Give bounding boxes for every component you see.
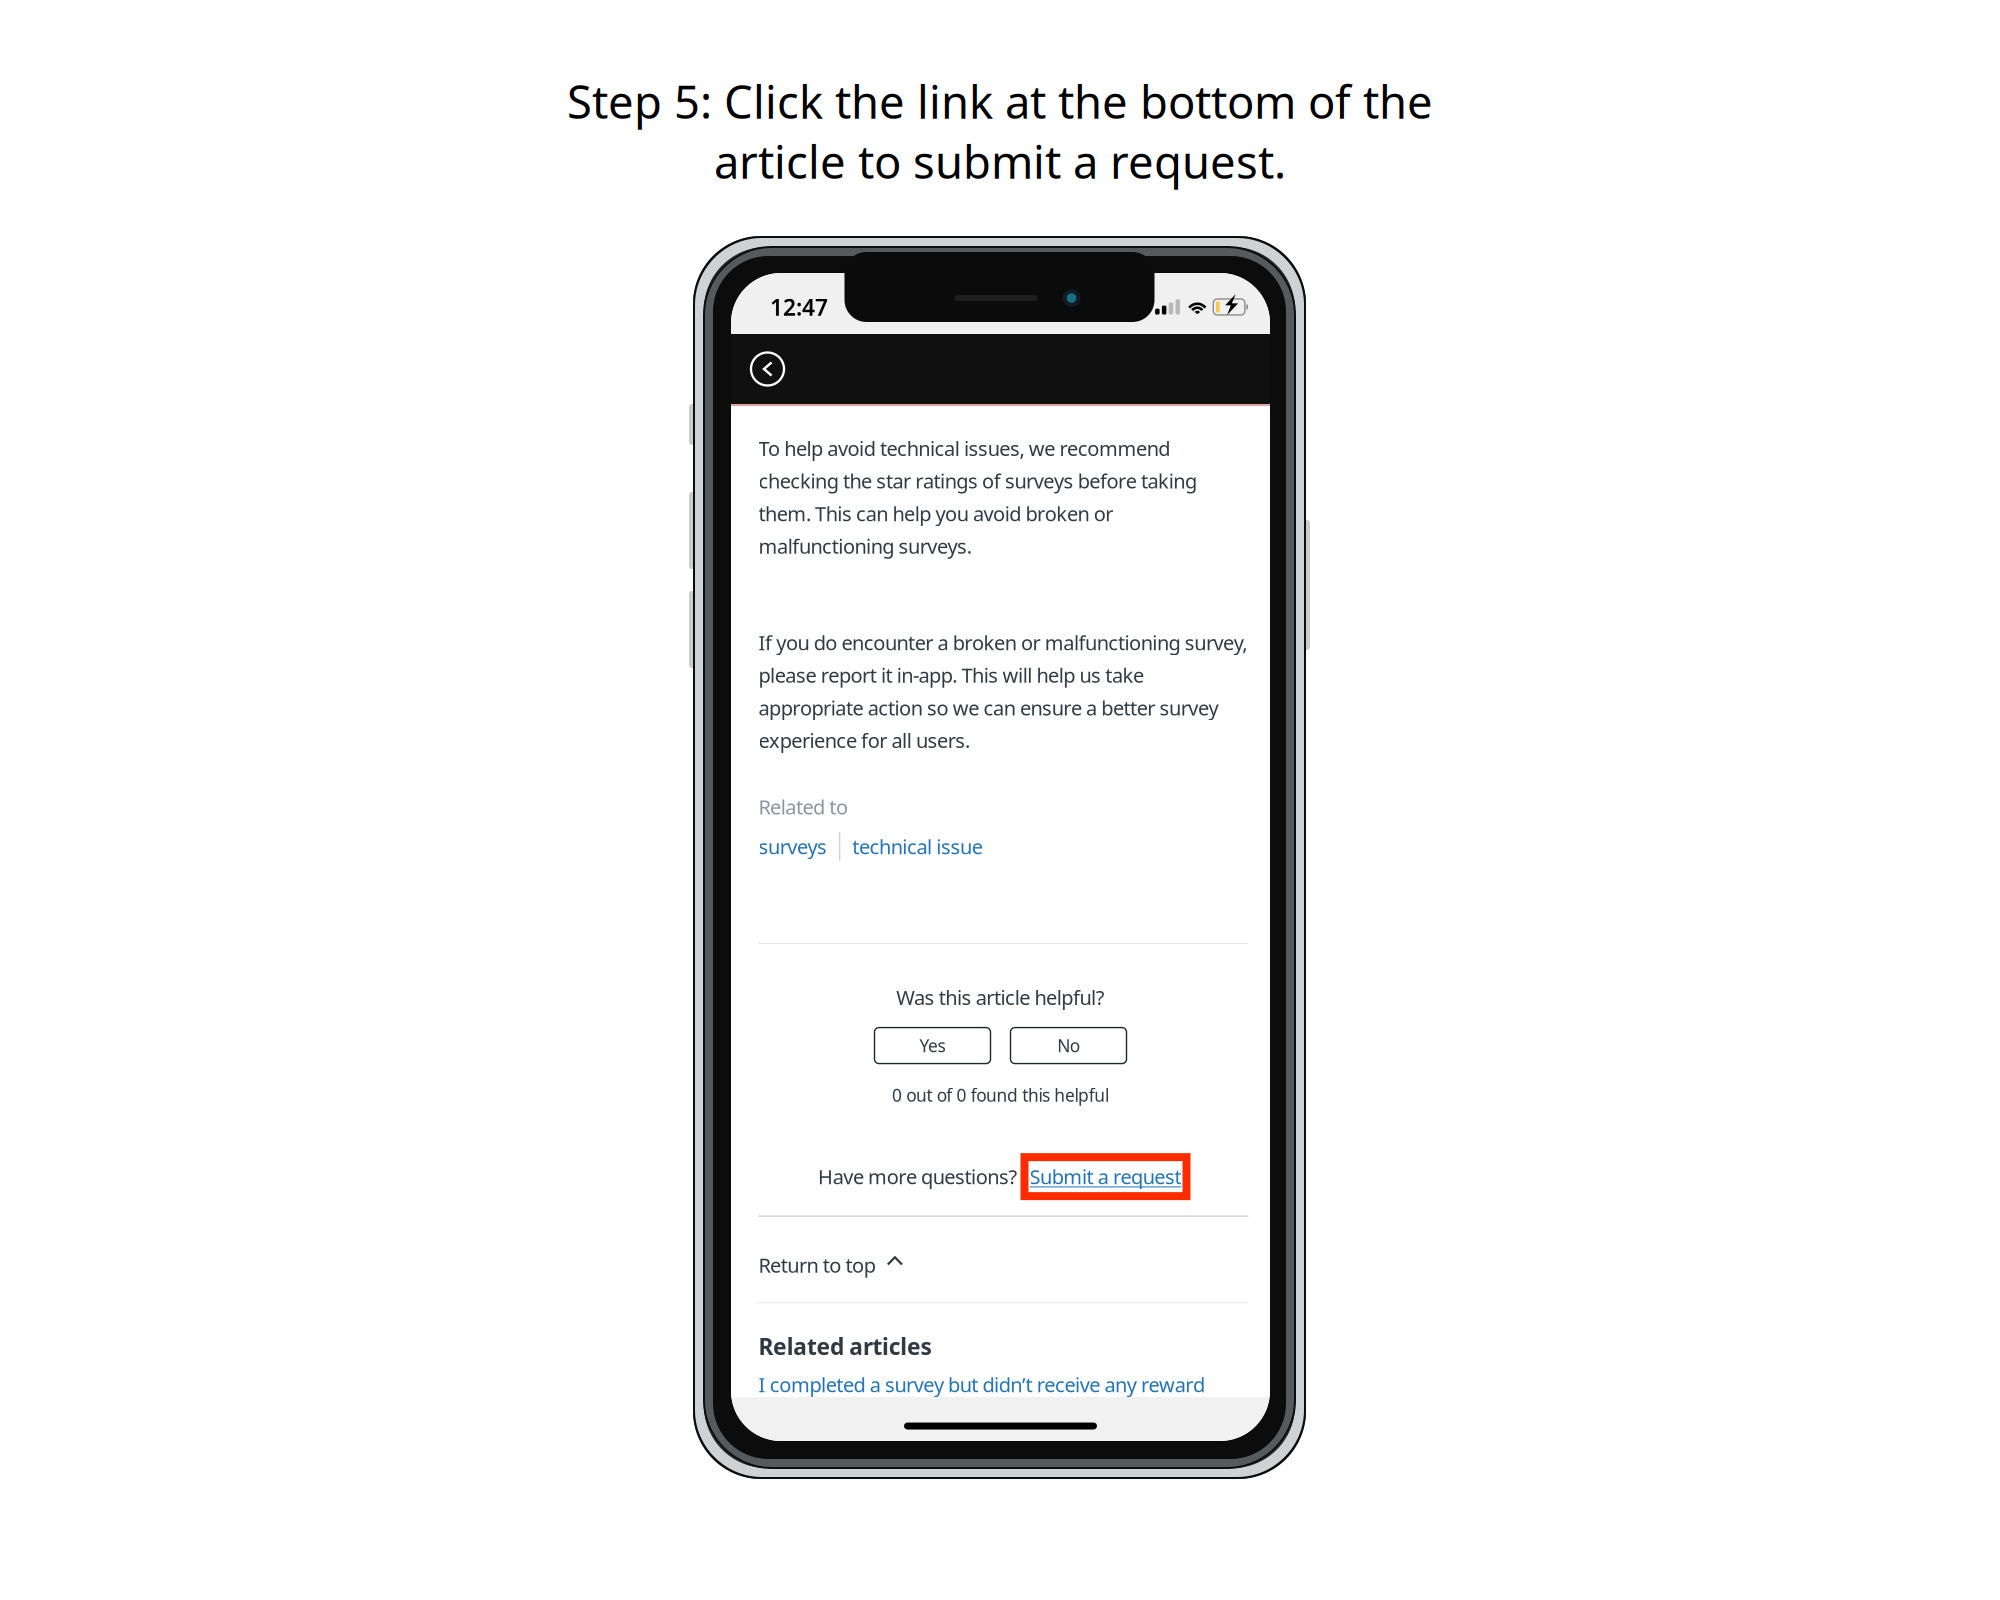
staticText: Have more questions? [818, 1163, 1017, 1190]
button[interactable]: Submit a request [1020, 1153, 1190, 1200]
staticText: Related articles [758, 1331, 931, 1361]
button[interactable]: Yes [874, 1028, 990, 1064]
button[interactable]: surveys [758, 833, 827, 860]
staticText: If you do encounter a broken or malfunct… [758, 629, 1247, 753]
staticText: Step 5: Click the link at the bottom of … [567, 71, 1433, 131]
staticText: technical issue [852, 833, 983, 860]
button[interactable]: Back [731, 338, 798, 399]
staticText: 12:47 [770, 292, 828, 322]
button[interactable]: I completed a survey but didn’t receive … [758, 1371, 1205, 1398]
staticText: Yes [919, 1034, 946, 1057]
staticText: No [1057, 1034, 1080, 1057]
staticText: Return to top [758, 1252, 876, 1278]
staticText: surveys [758, 833, 827, 860]
staticText: Was this article helpful? [896, 984, 1105, 1011]
staticText: 0 out of 0 found this helpful [892, 1084, 1109, 1107]
staticText: Submit a request [1029, 1163, 1181, 1190]
staticText: To help avoid technical issues, we recom… [758, 435, 1197, 559]
staticText: Related to [758, 793, 848, 820]
button[interactable]: No [1010, 1028, 1126, 1064]
staticText: I completed a survey but didn’t receive … [758, 1371, 1205, 1398]
button[interactable]: Return to top [758, 1252, 903, 1278]
button[interactable]: technical issue [852, 833, 983, 860]
staticText: article to submit a request. [714, 131, 1286, 191]
